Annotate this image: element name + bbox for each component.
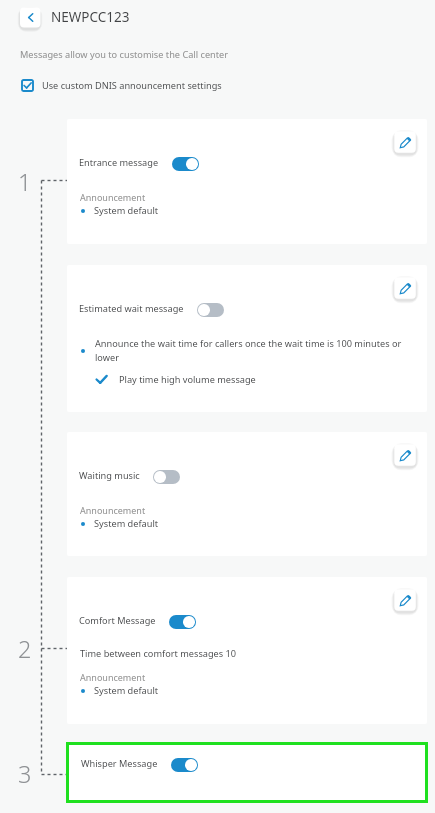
staticText: System default	[94, 204, 159, 217]
staticText: Estimated wait message	[79, 302, 184, 315]
button[interactable]: Use custom DNIS announcement settings	[21, 79, 222, 92]
button[interactable]: Edit	[392, 275, 418, 301]
staticText: Messages allow you to customise the Call…	[20, 48, 229, 61]
staticText: Announce the wait time for callers once …	[95, 337, 420, 364]
button[interactable]: Turn on	[197, 303, 224, 317]
staticText: Comfort Message	[79, 614, 156, 627]
staticText: 2	[18, 633, 32, 665]
button[interactable]: Edit	[67, 265, 427, 412]
staticText: Waiting music	[79, 469, 140, 482]
button[interactable]: Edit	[392, 129, 418, 155]
button[interactable]: Back	[16, 4, 44, 32]
staticText: 1	[18, 166, 32, 198]
staticText: Use custom DNIS announcement settings	[42, 79, 222, 92]
button[interactable]: Play time high volume message	[95, 373, 256, 386]
button[interactable]: Edit	[67, 119, 427, 244]
staticText: Time between comfort messages 10	[80, 647, 237, 660]
staticText: Announcement	[80, 504, 146, 516]
button[interactable]: Turn on	[153, 470, 180, 484]
staticText: 3	[18, 758, 32, 790]
staticText: Announcement	[80, 191, 146, 203]
button[interactable]: Turn off	[169, 615, 196, 629]
button[interactable]: Edit	[67, 432, 427, 556]
button[interactable]: Edit	[392, 442, 418, 468]
button[interactable]: Whisper Message	[66, 742, 428, 803]
staticText: System default	[94, 517, 159, 530]
staticText: Play time high volume message	[119, 373, 256, 386]
button[interactable]: Edit	[67, 577, 427, 724]
staticText: Announcement	[80, 671, 146, 683]
button[interactable]: Edit	[392, 587, 418, 613]
button[interactable]: Turn off	[172, 157, 199, 171]
staticText: Whisper Message	[81, 757, 158, 770]
button[interactable]: Turn off	[171, 758, 198, 772]
staticText: System default	[94, 684, 159, 697]
staticText: NEWPCC123	[51, 8, 130, 26]
staticText: Entrance message	[79, 156, 159, 169]
